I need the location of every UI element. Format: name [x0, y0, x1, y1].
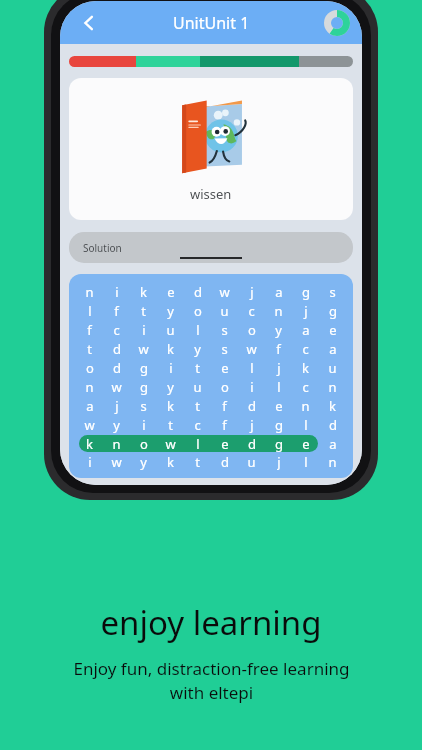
- staticText: u: [220, 302, 229, 320]
- staticText: w: [246, 340, 257, 358]
- staticText: t: [195, 453, 200, 470]
- staticText: y: [194, 340, 201, 358]
- staticText: i: [142, 416, 146, 434]
- staticText: g: [302, 283, 310, 301]
- staticText: y: [140, 453, 147, 470]
- staticText: d: [113, 340, 121, 358]
- staticText: a: [329, 435, 337, 453]
- staticText: o: [221, 378, 229, 396]
- staticText: k: [167, 397, 174, 415]
- button[interactable]: Back: [72, 6, 106, 40]
- staticText: l: [304, 453, 308, 470]
- staticText: c: [302, 340, 309, 358]
- staticText: i: [115, 283, 119, 301]
- staticText: wissen: [190, 185, 232, 203]
- button[interactable]: wissen: [69, 78, 353, 220]
- button[interactable]: Progress: [322, 8, 352, 38]
- staticText: c: [248, 302, 255, 320]
- staticText: y: [113, 416, 120, 434]
- staticText: j: [277, 453, 281, 470]
- staticText: n: [301, 397, 310, 415]
- staticText: u: [166, 321, 175, 339]
- staticText: g: [275, 416, 283, 434]
- staticText: i: [250, 378, 254, 396]
- staticText: n: [85, 283, 94, 301]
- staticText: k: [302, 359, 309, 377]
- staticText: c: [302, 378, 309, 396]
- staticText: e: [329, 321, 337, 339]
- staticText: g: [275, 435, 283, 453]
- staticText: d: [248, 397, 256, 415]
- staticText: Solution: [83, 241, 122, 255]
- staticText: o: [86, 359, 94, 377]
- staticText: w: [165, 435, 176, 453]
- staticText: l: [304, 416, 308, 434]
- staticText: s: [221, 321, 228, 339]
- staticText: f: [114, 302, 119, 320]
- staticText: u: [328, 359, 337, 377]
- staticText: c: [194, 416, 201, 434]
- staticText: d: [113, 359, 121, 377]
- staticText: w: [111, 453, 122, 470]
- button[interactable]: n: [69, 274, 353, 478]
- staticText: w: [111, 378, 122, 396]
- button[interactable]: Solution: [69, 232, 353, 263]
- staticText: u: [247, 453, 256, 470]
- staticText: j: [115, 397, 119, 415]
- staticText: n: [274, 302, 283, 320]
- staticText: a: [275, 283, 283, 301]
- staticText: l: [196, 435, 200, 453]
- staticText: n: [85, 378, 94, 396]
- staticText: w: [219, 283, 230, 301]
- staticText: d: [329, 416, 337, 434]
- staticText: j: [250, 283, 254, 301]
- staticText: j: [277, 359, 281, 377]
- staticText: f: [222, 397, 227, 415]
- staticText: w: [84, 416, 95, 434]
- staticText: t: [195, 397, 200, 415]
- staticText: j: [250, 416, 254, 434]
- staticText: a: [302, 321, 310, 339]
- staticText: f: [87, 321, 92, 339]
- staticText: f: [276, 340, 281, 358]
- staticText: c: [113, 321, 120, 339]
- staticText: n: [112, 435, 121, 453]
- staticText: t: [87, 340, 92, 358]
- staticText: k: [329, 397, 336, 415]
- staticText: n: [328, 453, 337, 470]
- staticText: UnitUnit 1: [173, 12, 250, 34]
- staticText: w: [138, 340, 149, 358]
- staticText: f: [222, 416, 227, 434]
- staticText: i: [169, 359, 173, 377]
- staticText: k: [167, 453, 174, 470]
- staticText: k: [167, 340, 174, 358]
- staticText: i: [142, 321, 146, 339]
- staticText: a: [329, 340, 337, 358]
- staticText: d: [194, 283, 202, 301]
- staticText: i: [88, 453, 92, 470]
- staticText: Enjoy fun, distraction-free learning wit…: [73, 657, 350, 704]
- staticText: e: [275, 397, 283, 415]
- staticText: k: [86, 435, 93, 453]
- staticText: g: [140, 378, 148, 396]
- staticText: t: [141, 302, 146, 320]
- staticText: e: [221, 435, 229, 453]
- staticText: enjoy learning: [100, 600, 322, 645]
- staticText: j: [304, 302, 308, 320]
- staticText: t: [195, 359, 200, 377]
- staticText: g: [329, 302, 337, 320]
- staticText: t: [168, 416, 173, 434]
- staticText: y: [275, 321, 282, 339]
- staticText: g: [140, 359, 148, 377]
- staticText: e: [221, 359, 229, 377]
- staticText: e: [167, 283, 175, 301]
- staticText: o: [194, 302, 202, 320]
- staticText: a: [86, 397, 94, 415]
- staticText: s: [140, 397, 147, 415]
- staticText: l: [250, 359, 254, 377]
- staticText: o: [140, 435, 148, 453]
- staticText: y: [167, 302, 174, 320]
- staticText: n: [328, 378, 337, 396]
- staticText: s: [329, 283, 336, 301]
- staticText: d: [221, 453, 229, 470]
